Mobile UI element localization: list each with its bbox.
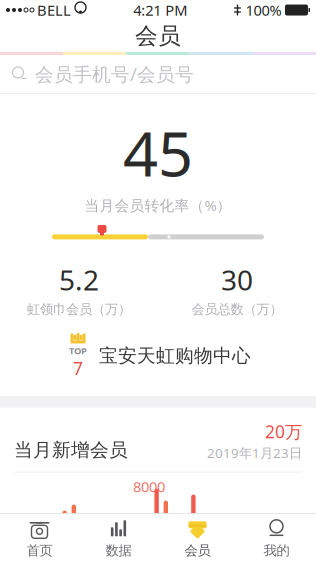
staticText: 会员总数（万） bbox=[191, 301, 282, 317]
staticText: 100% bbox=[245, 0, 281, 20]
staticText: 30 bbox=[221, 261, 253, 298]
button[interactable]: 会员手机号/会员号 bbox=[0, 55, 316, 93]
staticText: 会员 bbox=[135, 22, 181, 50]
staticText: 4:21 PM bbox=[133, 0, 187, 20]
staticText: 我的 bbox=[263, 542, 289, 559]
staticText: 虹领巾会员（万） bbox=[27, 301, 131, 317]
staticText: 当月新增会员 bbox=[14, 439, 128, 462]
staticText: 7 bbox=[73, 357, 83, 380]
button[interactable]: 首页 bbox=[0, 514, 79, 562]
staticText: 2019年1月23日 bbox=[207, 444, 302, 462]
staticText: 当月会员转化率（%） bbox=[84, 195, 231, 215]
staticText: 8000 bbox=[133, 477, 165, 496]
staticText: 5.2 bbox=[59, 261, 99, 298]
button[interactable]: 我的 bbox=[237, 514, 316, 562]
staticText: 会员手机号/会员号 bbox=[35, 62, 194, 86]
button[interactable]: 数据 bbox=[79, 514, 158, 562]
staticText: BELL bbox=[37, 0, 71, 20]
staticText: 20万 bbox=[265, 420, 302, 443]
staticText: 数据 bbox=[105, 542, 131, 559]
staticText: 宝安天虹购物中心 bbox=[99, 344, 251, 367]
staticText: 首页 bbox=[26, 542, 52, 559]
button[interactable]: 会员 bbox=[158, 514, 237, 562]
staticText: 45 bbox=[123, 112, 193, 193]
staticText: 会员 bbox=[184, 542, 210, 559]
staticText: TOP bbox=[69, 344, 87, 357]
